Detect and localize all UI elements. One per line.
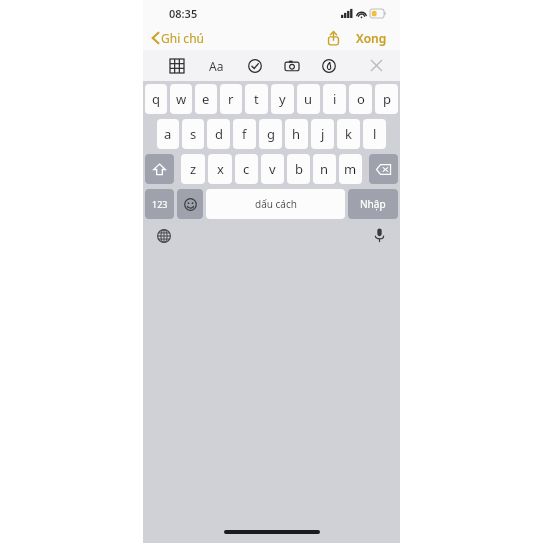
- button[interactable]: Checklist: [245, 56, 265, 76]
- button[interactable]: v: [261, 154, 284, 184]
- staticText: n: [320, 160, 329, 178]
- button[interactable]: y: [271, 84, 294, 114]
- button[interactable]: z: [181, 154, 205, 184]
- button[interactable]: s: [182, 119, 204, 149]
- button[interactable]: x: [208, 154, 232, 184]
- button[interactable]: dấu cách: [206, 189, 345, 219]
- staticText: Nhập: [360, 197, 386, 211]
- staticText: f: [242, 125, 247, 143]
- staticText: z: [190, 160, 197, 178]
- staticText: g: [267, 125, 275, 143]
- button[interactable]: i: [323, 84, 346, 114]
- staticText: k: [345, 125, 352, 143]
- button[interactable]: p: [375, 84, 398, 114]
- button[interactable]: Xong: [353, 27, 390, 49]
- staticText: a: [164, 125, 172, 143]
- button[interactable]: Ghi chú: [143, 27, 212, 49]
- button[interactable]: Dictation: [373, 226, 386, 244]
- button[interactable]: e: [195, 84, 217, 114]
- button[interactable]: h: [285, 119, 308, 149]
- staticText: Xong: [356, 30, 387, 46]
- button[interactable]: Aa: [205, 54, 228, 78]
- button[interactable]: k: [337, 119, 360, 149]
- staticText: y: [279, 90, 286, 108]
- button[interactable]: Emoji: [177, 189, 203, 219]
- button[interactable]: f: [233, 119, 256, 149]
- staticText: 08:35: [169, 6, 198, 21]
- staticText: u: [304, 90, 313, 108]
- staticText: r: [228, 90, 234, 108]
- button[interactable]: Markup: [319, 56, 339, 76]
- staticText: l: [373, 125, 377, 143]
- staticText: d: [215, 125, 223, 143]
- button[interactable]: Share: [324, 27, 343, 49]
- button[interactable]: a: [157, 119, 179, 149]
- button[interactable]: Change keyboard: [155, 227, 173, 245]
- button[interactable]: q: [145, 84, 167, 114]
- button[interactable]: Camera: [282, 56, 302, 76]
- staticText: q: [152, 90, 160, 108]
- button[interactable]: j: [311, 119, 334, 149]
- staticText: dấu cách: [255, 197, 297, 211]
- staticText: t: [254, 90, 259, 108]
- staticText: o: [357, 90, 365, 108]
- staticText: p: [383, 90, 391, 108]
- staticText: s: [190, 125, 197, 143]
- staticText: 123: [152, 198, 168, 210]
- staticText: Aa: [209, 58, 224, 74]
- button[interactable]: n: [313, 154, 336, 184]
- staticText: x: [217, 160, 224, 178]
- button[interactable]: g: [259, 119, 282, 149]
- button[interactable]: o: [349, 84, 372, 114]
- staticText: c: [243, 160, 250, 178]
- button[interactable]: m: [339, 154, 362, 184]
- button[interactable]: t: [245, 84, 268, 114]
- staticText: v: [269, 160, 276, 178]
- staticText: b: [295, 160, 303, 178]
- staticText: w: [176, 90, 187, 108]
- button[interactable]: w: [170, 84, 192, 114]
- button[interactable]: l: [363, 119, 386, 149]
- staticText: m: [344, 160, 357, 178]
- button[interactable]: d: [207, 119, 230, 149]
- button[interactable]: c: [235, 154, 258, 184]
- button[interactable]: u: [297, 84, 320, 114]
- button[interactable]: Nhập: [348, 189, 398, 219]
- button[interactable]: b: [287, 154, 310, 184]
- staticText: e: [202, 90, 210, 108]
- button[interactable]: r: [220, 84, 242, 114]
- button[interactable]: Close keyboard: [367, 56, 386, 75]
- button[interactable]: Key: [369, 154, 398, 184]
- button[interactable]: 123: [145, 189, 174, 219]
- staticText: Ghi chú: [161, 30, 204, 46]
- button[interactable]: Key: [145, 154, 174, 184]
- staticText: h: [292, 125, 301, 143]
- staticText: j: [321, 125, 325, 143]
- staticText: i: [333, 90, 337, 108]
- button[interactable]: Table: [167, 56, 187, 76]
